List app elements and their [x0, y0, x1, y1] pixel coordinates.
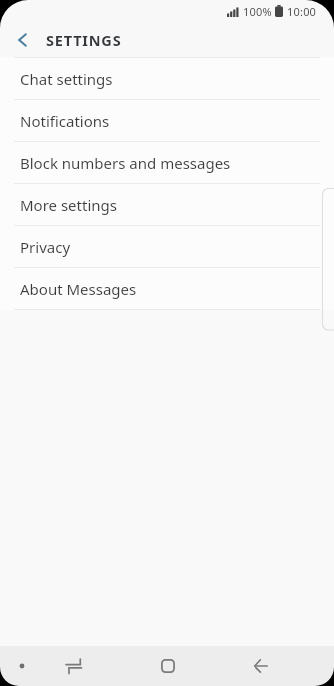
button[interactable]: Block numbers and messages — [0, 142, 334, 183]
staticText: About Messages — [20, 279, 137, 299]
button[interactable] — [214, 646, 307, 686]
button[interactable] — [27, 646, 121, 686]
staticText: Chat settings — [20, 69, 113, 89]
staticText: SETTINGS — [46, 30, 122, 50]
button[interactable]: Notifications — [0, 100, 334, 141]
button[interactable] — [0, 22, 44, 57]
button[interactable]: About Messages — [0, 268, 334, 309]
staticText: Block numbers and messages — [20, 153, 231, 173]
button[interactable]: More settings — [0, 184, 334, 225]
staticText: Notifications — [20, 111, 110, 131]
staticText: Privacy — [20, 237, 71, 257]
staticText: 10:00 — [287, 4, 317, 19]
button[interactable]: Chat settings — [0, 58, 334, 99]
staticText: 100% — [243, 4, 272, 19]
staticText: More settings — [20, 195, 117, 215]
button[interactable] — [121, 646, 214, 686]
button[interactable]: Privacy — [0, 226, 334, 267]
